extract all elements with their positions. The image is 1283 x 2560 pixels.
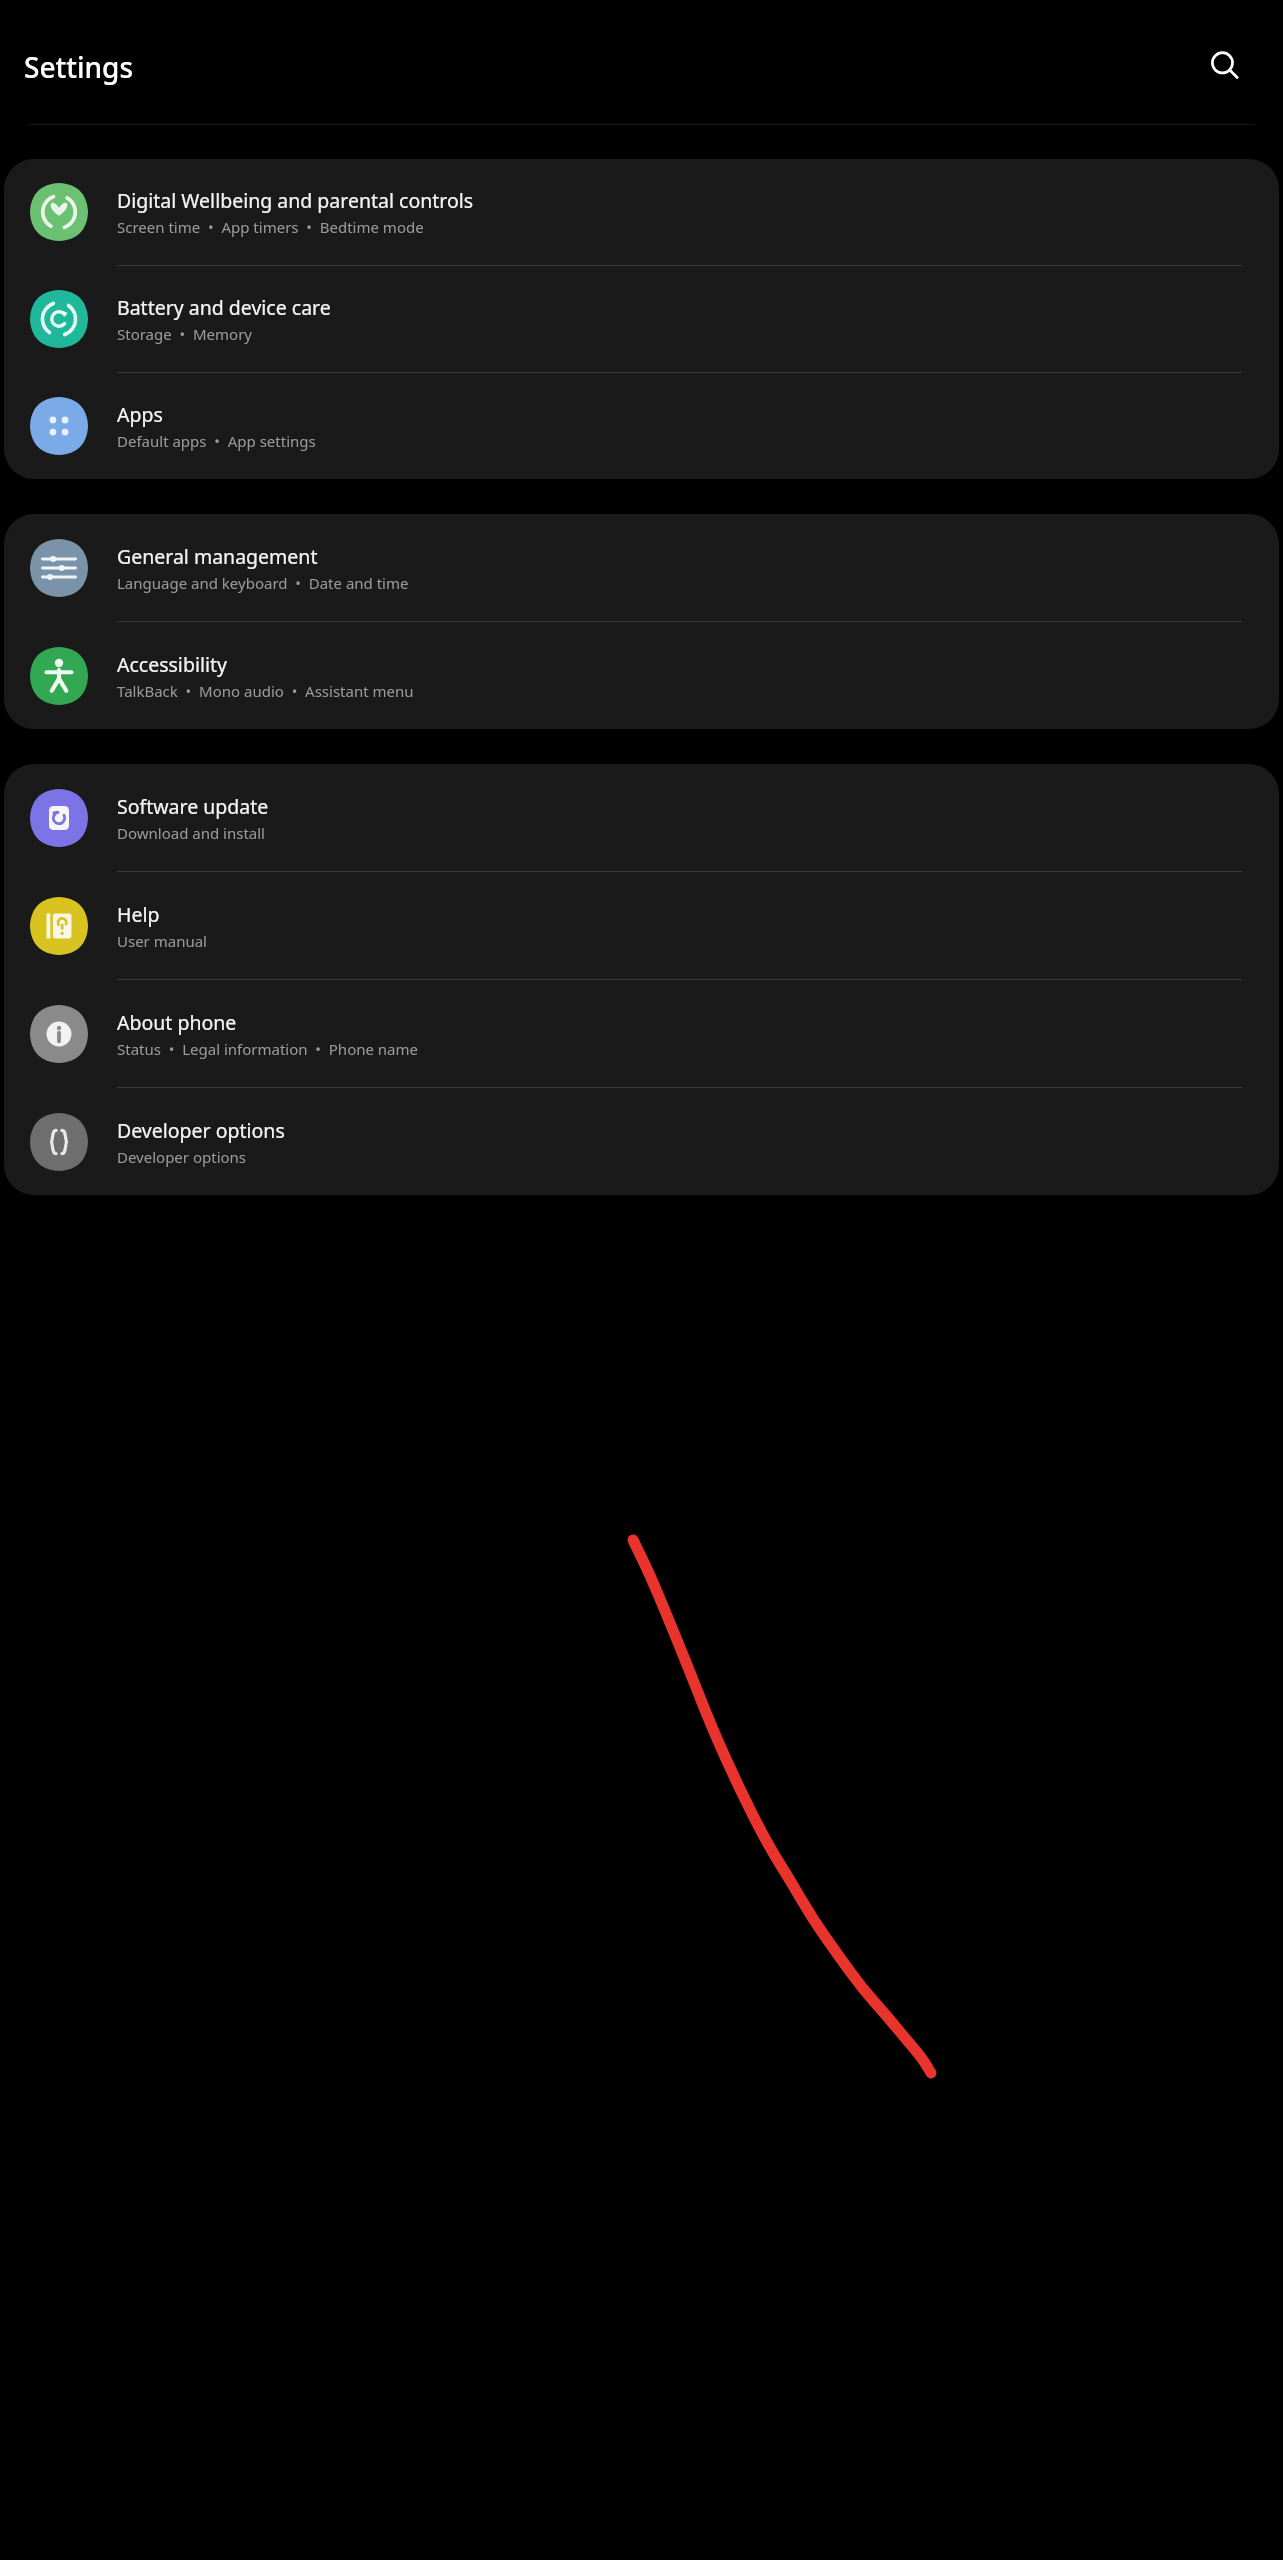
button[interactable]: Developer options — [4, 1088, 1279, 1195]
button[interactable]: Digital Wellbeing and parental controls — [4, 159, 1279, 265]
button[interactable]: Apps — [4, 373, 1279, 479]
button[interactable]: Help — [4, 872, 1279, 979]
staticText: Screen time • App timers • Bedtime mode — [117, 217, 424, 237]
staticText: General management — [117, 543, 318, 570]
staticText: Settings — [24, 48, 134, 86]
staticText: Status • Legal information • Phone name — [117, 1039, 419, 1059]
button[interactable]: Advanced features — [4, 0, 1279, 125]
button[interactable]: Software update — [4, 764, 1279, 871]
staticText: Help — [117, 901, 160, 928]
staticText: Download and install — [117, 823, 265, 843]
staticText: Digital Wellbeing and parental controls — [117, 187, 474, 214]
button[interactable]: Accessibility — [4, 622, 1279, 729]
staticText: Storage • Memory — [117, 324, 252, 344]
button[interactable]: Battery and device care — [4, 266, 1279, 372]
staticText: Developer options — [117, 1147, 247, 1167]
staticText: Default apps • App settings — [117, 431, 316, 451]
button[interactable]: About phone — [4, 980, 1279, 1087]
staticText: Apps — [117, 401, 163, 428]
staticText: Accessibility — [117, 651, 227, 678]
button[interactable]: Search — [1199, 40, 1251, 92]
button[interactable]: General management — [4, 514, 1279, 621]
staticText: Language and keyboard • Date and time — [117, 573, 409, 593]
staticText: About phone — [117, 1009, 237, 1036]
staticText: TalkBack • Mono audio • Assistant menu — [117, 681, 414, 701]
staticText: Software update — [117, 793, 269, 820]
staticText: User manual — [117, 931, 207, 951]
staticText: Developer options — [117, 1117, 285, 1144]
staticText: Battery and device care — [117, 294, 331, 321]
